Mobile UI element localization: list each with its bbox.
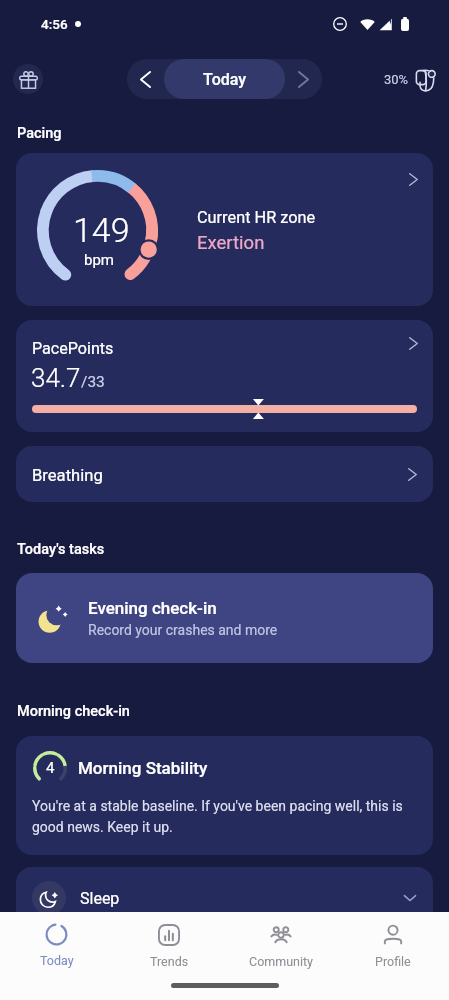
button[interactable]: Today <box>164 59 285 99</box>
staticText: bpm <box>84 251 114 269</box>
button[interactable]: Profile <box>337 912 449 1000</box>
button[interactable]: Trends <box>113 912 225 1000</box>
staticText: Exertion <box>197 232 265 254</box>
button[interactable]: Next day <box>285 59 322 99</box>
button[interactable]: 30% <box>384 65 438 93</box>
staticText: Trends <box>150 954 189 969</box>
staticText: Today <box>203 70 247 89</box>
button[interactable]: Sleep <box>16 867 433 929</box>
staticText: Today's tasks <box>17 541 105 558</box>
staticText: You're at a stable baseline. If you've b… <box>32 798 417 835</box>
staticText: PacePoints <box>32 339 114 358</box>
button[interactable]: Community <box>225 912 337 1000</box>
staticText: Pacing <box>17 125 62 142</box>
staticText: Today <box>40 953 74 968</box>
button[interactable]: Today <box>0 912 113 1000</box>
staticText: /33 <box>81 373 105 391</box>
button[interactable]: Evening check-in <box>16 573 433 663</box>
staticText: Breathing <box>32 466 103 485</box>
staticText: Current HR zone <box>197 208 316 227</box>
staticText: Record your crashes and more <box>88 622 278 638</box>
staticText: 4:56 <box>41 16 68 32</box>
staticText: Sleep <box>80 889 120 908</box>
staticText: Profile <box>375 954 411 969</box>
staticText: 4 <box>46 759 55 777</box>
button[interactable]: Rewards <box>13 64 43 94</box>
button[interactable]: 4 <box>16 736 433 855</box>
staticText: Evening check-in <box>88 598 217 618</box>
staticText: 149 <box>73 210 130 250</box>
button[interactable]: 149 <box>16 153 433 306</box>
staticText: 34.7 <box>31 363 81 393</box>
staticText: Community <box>249 954 314 969</box>
button[interactable]: Breathing <box>16 446 433 502</box>
staticText: Morning Stability <box>78 758 208 778</box>
button[interactable]: Previous day <box>127 59 164 99</box>
staticText: Morning check-in <box>17 703 130 720</box>
button[interactable]: PacePoints <box>16 320 433 432</box>
staticText: 30% <box>384 72 409 87</box>
